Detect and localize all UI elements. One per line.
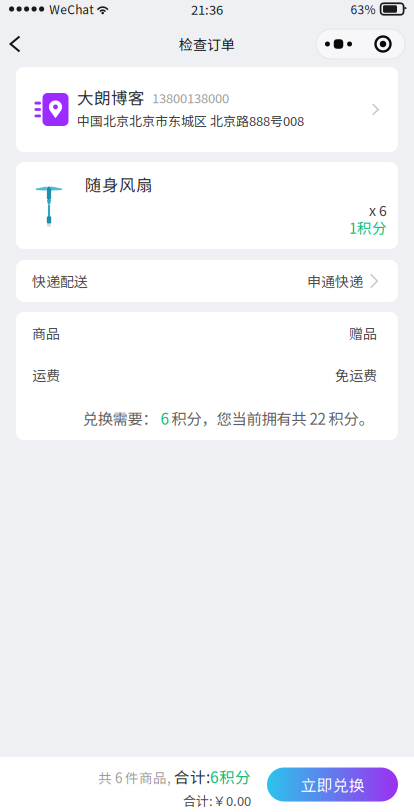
staticText: x 6 <box>369 200 387 220</box>
staticText: 6 <box>157 407 171 429</box>
staticText: 积分，您当前拥有共 22 积分。 <box>171 407 373 429</box>
staticText: 商品 <box>32 323 60 343</box>
staticText: 合计:￥0.00 <box>183 791 251 810</box>
staticText: 13800138000 <box>152 88 229 107</box>
staticText: 赠品 <box>349 323 377 343</box>
staticText: WeChat <box>49 0 94 18</box>
staticText: 中国北京北京市东城区 北京路888号008 <box>77 111 304 130</box>
staticText: 21:36 <box>191 0 223 18</box>
button[interactable]: 大朗博客 <box>16 67 398 152</box>
staticText: 63% <box>351 0 376 18</box>
staticText: 检查订单 <box>179 34 235 54</box>
button[interactable]: 立即兑换 <box>267 767 398 801</box>
staticText: 兑换需要： <box>82 407 157 429</box>
staticText: 1积分 <box>349 217 387 238</box>
button[interactable]: More options <box>316 29 405 59</box>
staticText: 立即兑换 <box>300 773 364 796</box>
staticText: 共 6 件商品, <box>98 768 171 787</box>
staticText: 快递配送 <box>32 271 88 291</box>
staticText: 运费 <box>32 365 60 385</box>
staticText: 免运费 <box>335 365 377 385</box>
staticText: 合计: <box>171 765 210 788</box>
button[interactable]: Back <box>0 27 30 61</box>
staticText: 随身风扇 <box>85 172 153 196</box>
staticText: 申通快递 <box>307 271 363 291</box>
staticText: 大朗博客 <box>77 85 145 109</box>
staticText: 6积分 <box>210 765 251 788</box>
button[interactable]: 快递配送 <box>16 260 398 302</box>
